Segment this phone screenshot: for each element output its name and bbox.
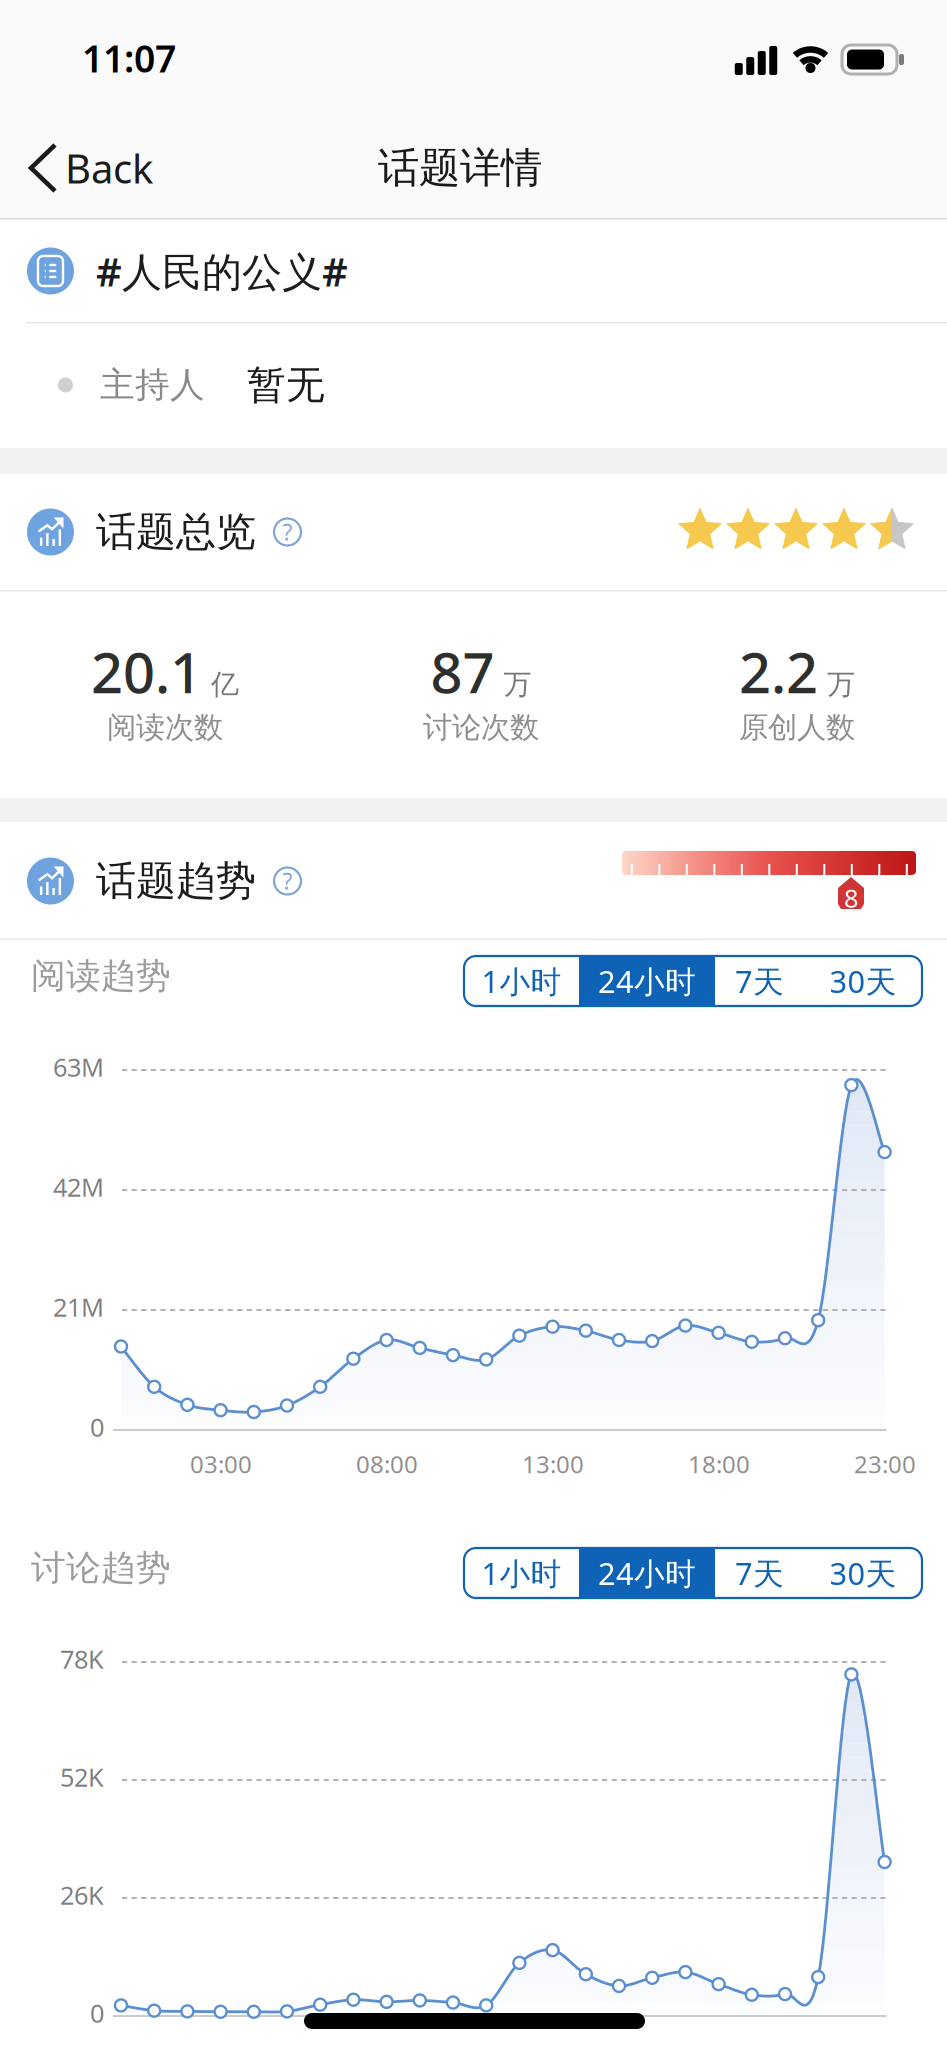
staticText: 24小时 <box>598 1553 696 1593</box>
staticText: 暂无 <box>247 361 325 409</box>
staticText: 30天 <box>829 1553 896 1593</box>
staticText: 03:00 <box>190 1448 252 1480</box>
staticText: ? <box>282 866 292 896</box>
staticText: 万 <box>827 667 855 702</box>
button[interactable]: 1小时 <box>464 1548 579 1598</box>
staticText: 42M <box>53 1170 104 1204</box>
staticText: 讨论次数 <box>423 709 539 745</box>
staticText: ? <box>282 517 292 547</box>
button[interactable]: Back <box>0 118 230 218</box>
staticText: 2.2 <box>739 634 818 709</box>
button[interactable]: 30天 <box>804 956 922 1006</box>
staticText: 18:00 <box>688 1448 750 1480</box>
button[interactable]: 7天 <box>715 1548 804 1598</box>
staticText: 30天 <box>829 961 896 1001</box>
staticText: 23:00 <box>854 1448 916 1480</box>
staticText: 1小时 <box>481 1553 561 1593</box>
button[interactable]: #人民的公义# <box>0 220 947 322</box>
staticText: 原创人数 <box>739 709 855 745</box>
staticText: 0 <box>90 1996 104 2030</box>
staticText: 78K <box>60 1642 104 1676</box>
button[interactable]: 1小时 <box>464 956 579 1006</box>
staticText: 24小时 <box>598 961 696 1001</box>
button[interactable]: 24小时 <box>579 956 715 1006</box>
staticText: 7天 <box>735 1553 784 1593</box>
staticText: #人民的公义# <box>96 244 348 297</box>
staticText: 话题趋势 <box>96 856 256 905</box>
staticText: 21M <box>53 1290 104 1324</box>
staticText: 阅读趋势 <box>31 955 171 997</box>
staticText: 话题总览 <box>96 507 256 556</box>
staticText: 63M <box>53 1050 104 1084</box>
staticText: 87 <box>430 634 494 709</box>
staticText: 26K <box>60 1878 104 1912</box>
staticText: 万 <box>503 667 531 702</box>
staticText: 亿 <box>211 667 239 702</box>
staticText: 13:00 <box>522 1448 584 1480</box>
button[interactable]: 24小时 <box>579 1548 715 1598</box>
staticText: 讨论趋势 <box>31 1547 171 1589</box>
staticText: 0 <box>90 1410 104 1444</box>
staticText: 11:07 <box>82 33 176 83</box>
staticText: 1小时 <box>481 961 561 1001</box>
staticText: Back <box>65 141 153 194</box>
button[interactable]: 7天 <box>715 956 804 1006</box>
staticText: 8 <box>844 881 858 915</box>
staticText: 阅读次数 <box>107 709 223 745</box>
staticText: 52K <box>60 1760 104 1794</box>
staticText: 7天 <box>735 961 784 1001</box>
staticText: 主持人 <box>100 364 205 406</box>
staticText: 话题详情 <box>378 143 542 193</box>
staticText: 20.1 <box>91 634 202 709</box>
staticText: 08:00 <box>356 1448 418 1480</box>
button[interactable]: 30天 <box>804 1548 922 1598</box>
